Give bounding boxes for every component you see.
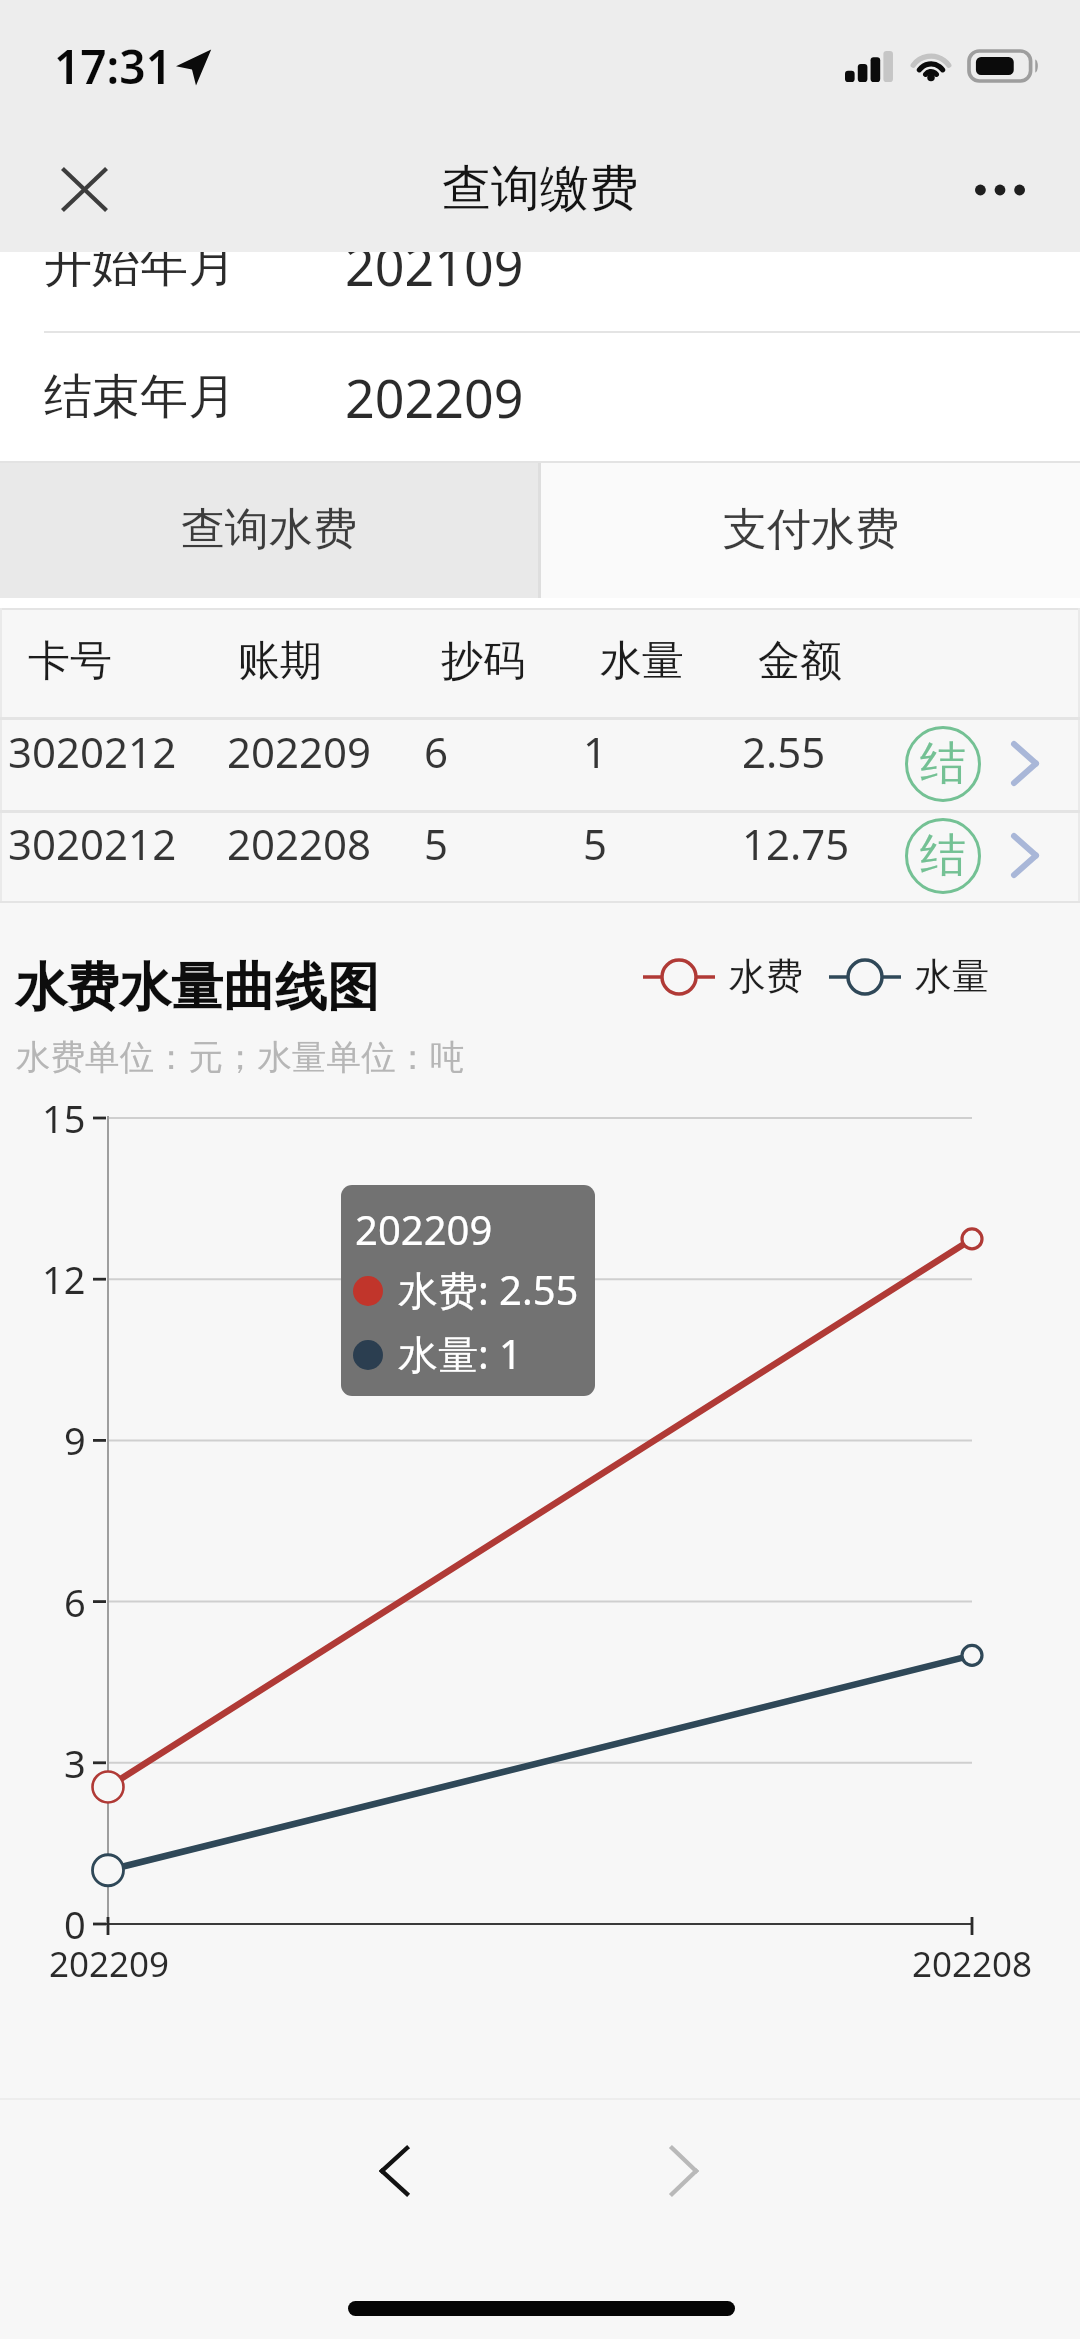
staticText: 3	[64, 1737, 86, 1789]
staticText: 202209	[355, 1202, 493, 1256]
staticText: 202209	[49, 1940, 170, 1988]
staticText: 6	[64, 1576, 86, 1628]
staticText: 查询缴费	[442, 158, 638, 220]
button[interactable]: More options	[955, 145, 1045, 235]
staticText: 水费水量曲线图	[15, 955, 379, 1021]
button[interactable]: 3020212	[0, 810, 1080, 901]
button[interactable]: 开始年月	[0, 212, 1080, 318]
staticText: 支付水费	[723, 502, 899, 557]
staticText: 1	[583, 723, 608, 780]
staticText: 账期	[238, 635, 322, 688]
staticText: 结束年月	[44, 367, 236, 427]
button[interactable]: Back	[334, 2108, 454, 2228]
staticText: 202209	[345, 362, 524, 433]
staticText: 0	[64, 1898, 86, 1950]
button[interactable]: 3020212	[0, 717, 1080, 810]
staticText: 2.55	[742, 723, 826, 780]
staticText: 水费单位：元；水量单位：吨	[16, 1036, 465, 1079]
staticText: 202109	[345, 230, 524, 301]
staticText: 卡号	[28, 635, 112, 688]
staticText: 5	[424, 815, 449, 872]
staticText: 3020212	[8, 723, 177, 780]
staticText: 查询水费	[181, 502, 357, 557]
staticText: 水量	[600, 635, 684, 688]
button[interactable]: Forward	[624, 2108, 744, 2228]
staticText: 水费	[729, 953, 803, 1000]
button[interactable]: 查询水费	[0, 461, 538, 598]
button[interactable]: Close	[44, 145, 124, 225]
staticText: 抄码	[441, 635, 525, 688]
button[interactable]: 结束年月	[0, 344, 1080, 450]
staticText: 12	[42, 1253, 86, 1305]
staticText: 结	[920, 735, 966, 793]
staticText: 9	[64, 1414, 86, 1466]
staticText: 结	[920, 827, 966, 885]
staticText: 17:31	[54, 35, 172, 98]
staticText: 水量	[915, 953, 989, 1000]
staticText: 开始年月	[44, 235, 236, 295]
staticText: 3020212	[8, 815, 177, 872]
staticText: 水量: 1	[398, 1326, 522, 1381]
staticText: 6	[424, 723, 449, 780]
staticText: 金额	[758, 635, 842, 688]
button[interactable]: 支付水费	[541, 461, 1080, 598]
staticText: 水费: 2.55	[398, 1262, 579, 1317]
staticText: 12.75	[742, 815, 850, 872]
staticText: 202209	[227, 723, 372, 780]
staticText: 202208	[227, 815, 372, 872]
staticText: 15	[42, 1092, 86, 1144]
staticText: 5	[583, 815, 608, 872]
staticText: 202208	[912, 1940, 1033, 1988]
